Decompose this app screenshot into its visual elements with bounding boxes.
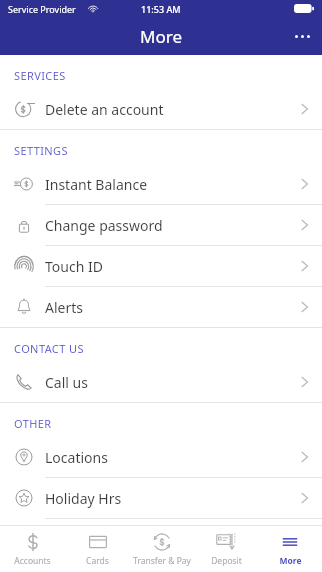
staticText: Transfer & Pay: [133, 555, 191, 567]
staticText: Deposit: [211, 555, 242, 567]
staticText: CONTACT US: [14, 341, 84, 356]
button[interactable]: Alerts: [0, 287, 322, 327]
staticText: Alerts: [45, 298, 301, 317]
staticText: OTHER: [14, 416, 52, 431]
staticText: More: [279, 555, 302, 567]
button[interactable]: Change password: [0, 205, 322, 245]
button[interactable]: Call us: [0, 362, 322, 402]
staticText: 11:53 AM: [141, 3, 181, 15]
button[interactable]: Touch ID: [0, 246, 322, 286]
button[interactable]: Holiday Hrs: [0, 478, 322, 518]
staticText: Accounts: [14, 555, 51, 567]
staticText: Change password: [45, 216, 301, 235]
staticText: Holiday Hrs: [45, 489, 301, 508]
button[interactable]: Deposit: [194, 526, 258, 572]
button[interactable]: Locations: [0, 437, 322, 477]
button[interactable]: Transfer & Pay: [130, 526, 194, 572]
button[interactable]: Instant Balance: [0, 164, 322, 204]
staticText: Service Provider: [8, 3, 76, 15]
staticText: Cards: [86, 555, 109, 567]
staticText: SETTINGS: [14, 143, 68, 158]
button[interactable]: More: [258, 526, 322, 572]
staticText: Delete an account: [45, 100, 301, 119]
staticText: More: [140, 25, 182, 48]
staticText: Call us: [45, 373, 301, 392]
button[interactable]: Accounts: [0, 526, 65, 572]
staticText: SERVICES: [14, 68, 66, 83]
staticText: Locations: [45, 448, 301, 467]
button[interactable]: More options: [283, 25, 322, 48]
staticText: Instant Balance: [45, 175, 301, 194]
button[interactable]: Delete an account: [0, 89, 322, 129]
staticText: Touch ID: [45, 257, 301, 276]
button[interactable]: Cards: [65, 526, 130, 572]
